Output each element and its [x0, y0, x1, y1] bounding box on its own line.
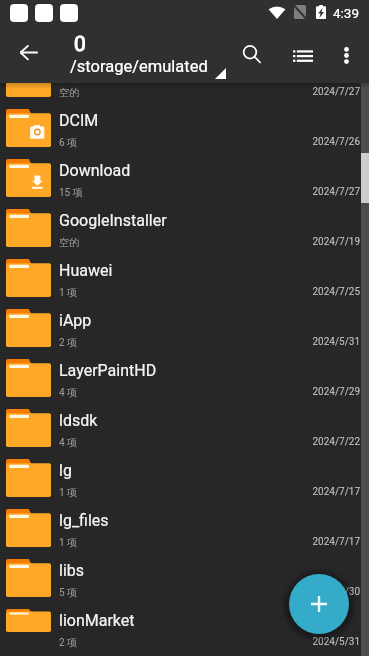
- staticText: 2024/7/22: [312, 436, 360, 448]
- button[interactable]: libs: [0, 552, 369, 602]
- staticText: 2024/7/25: [312, 286, 360, 298]
- staticText: 2024/7/19: [312, 236, 360, 248]
- staticText: 空的: [59, 86, 79, 99]
- staticText: 1 项: [59, 536, 78, 549]
- staticText: 2024/7/29: [312, 386, 360, 398]
- button[interactable]: Search: [232, 35, 272, 75]
- staticText: 2024/7/27: [312, 86, 360, 98]
- staticText: 5 项: [59, 586, 78, 599]
- button[interactable]: Huawei: [0, 252, 369, 302]
- button[interactable]: More options: [326, 35, 366, 75]
- staticText: 1 项: [59, 286, 78, 299]
- staticText: 2024/7/17: [312, 536, 360, 548]
- button[interactable]: lg: [0, 452, 369, 502]
- staticText: /storage/emulated: [70, 57, 208, 76]
- button[interactable]: DCIM: [0, 102, 369, 152]
- staticText: 0: [74, 32, 86, 57]
- button[interactable]: Back: [11, 35, 47, 71]
- staticText: lionMarket: [59, 611, 135, 630]
- staticText: 15 项: [59, 186, 83, 199]
- staticText: libs: [59, 561, 85, 580]
- staticText: 2 项: [59, 636, 78, 649]
- button[interactable]: View list: [283, 35, 323, 75]
- staticText: 2 项: [59, 336, 78, 349]
- button[interactable]: lionMarket: [0, 602, 369, 625]
- staticText: 1 项: [59, 486, 78, 499]
- staticText: 空的: [59, 236, 79, 249]
- button[interactable]: lg_files: [0, 502, 369, 552]
- staticText: 4 项: [59, 386, 78, 399]
- staticText: lg: [59, 461, 72, 480]
- button[interactable]: ldsdk: [0, 402, 369, 452]
- button[interactable]: iApp: [0, 302, 369, 352]
- staticText: 4 项: [59, 436, 78, 449]
- staticText: DCIM: [59, 111, 99, 130]
- staticText: lg_files: [59, 511, 109, 530]
- staticText: 2024/7/26: [312, 136, 360, 148]
- staticText: iApp: [59, 311, 92, 330]
- staticText: Huawei: [59, 261, 113, 280]
- staticText: LayerPaintHD: [59, 361, 157, 380]
- staticText: 4:39: [333, 5, 360, 21]
- staticText: 2024/5/31: [312, 636, 360, 648]
- button[interactable]: GoogleInstaller: [0, 202, 369, 252]
- staticText: 6 项: [59, 136, 78, 149]
- staticText: 2024/7/30: [312, 586, 360, 598]
- button[interactable]: Add: [289, 574, 349, 634]
- button[interactable]: Alarms: [0, 83, 369, 102]
- staticText: GoogleInstaller: [59, 211, 167, 230]
- button[interactable]: Download: [0, 152, 369, 202]
- staticText: ldsdk: [59, 411, 98, 430]
- staticText: 2024/7/27: [312, 186, 360, 198]
- button[interactable]: LayerPaintHD: [0, 352, 369, 402]
- staticText: 2024/7/17: [312, 486, 360, 498]
- staticText: Download: [59, 161, 131, 180]
- staticText: 2024/5/31: [312, 336, 360, 348]
